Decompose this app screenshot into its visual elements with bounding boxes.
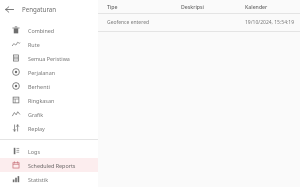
staticText: 19/10/2024, 15:54:19 <box>245 19 295 26</box>
button[interactable]: Logs <box>0 144 98 158</box>
button[interactable]: Replay <box>0 121 98 135</box>
staticText: Deskripsi <box>181 3 204 10</box>
staticText: Perjalanan <box>28 69 56 76</box>
staticText: Tipe <box>107 3 118 10</box>
staticText: Grafik <box>28 111 44 118</box>
button[interactable]: Geofence entered <box>98 14 300 31</box>
staticText: Ringkasan <box>28 97 55 104</box>
staticText: Pengaturan <box>22 5 57 13</box>
staticText: Semua Peristiwa <box>28 55 70 62</box>
staticText: Combined <box>28 27 55 34</box>
staticText: Geofence entered <box>107 19 150 26</box>
button[interactable]: Semua Peristiwa <box>0 51 98 65</box>
staticText: Berhenti <box>28 83 50 90</box>
button[interactable]: Rute <box>0 37 98 51</box>
staticText: Replay <box>28 125 45 132</box>
button[interactable]: Back <box>0 0 18 18</box>
staticText: Rute <box>28 41 40 48</box>
button[interactable]: Statistik <box>0 172 98 186</box>
button[interactable]: Combined <box>0 23 98 37</box>
button[interactable]: Ringkasan <box>0 93 98 107</box>
button[interactable]: Perjalanan <box>0 65 98 79</box>
staticText: Statistik <box>28 176 49 183</box>
staticText: Logs <box>28 148 40 155</box>
button[interactable]: Scheduled Reports <box>0 158 98 172</box>
button[interactable]: Berhenti <box>0 79 98 93</box>
button[interactable]: Grafik <box>0 107 98 121</box>
staticText: Scheduled Reports <box>28 162 76 169</box>
staticText: Kalender <box>245 3 268 10</box>
